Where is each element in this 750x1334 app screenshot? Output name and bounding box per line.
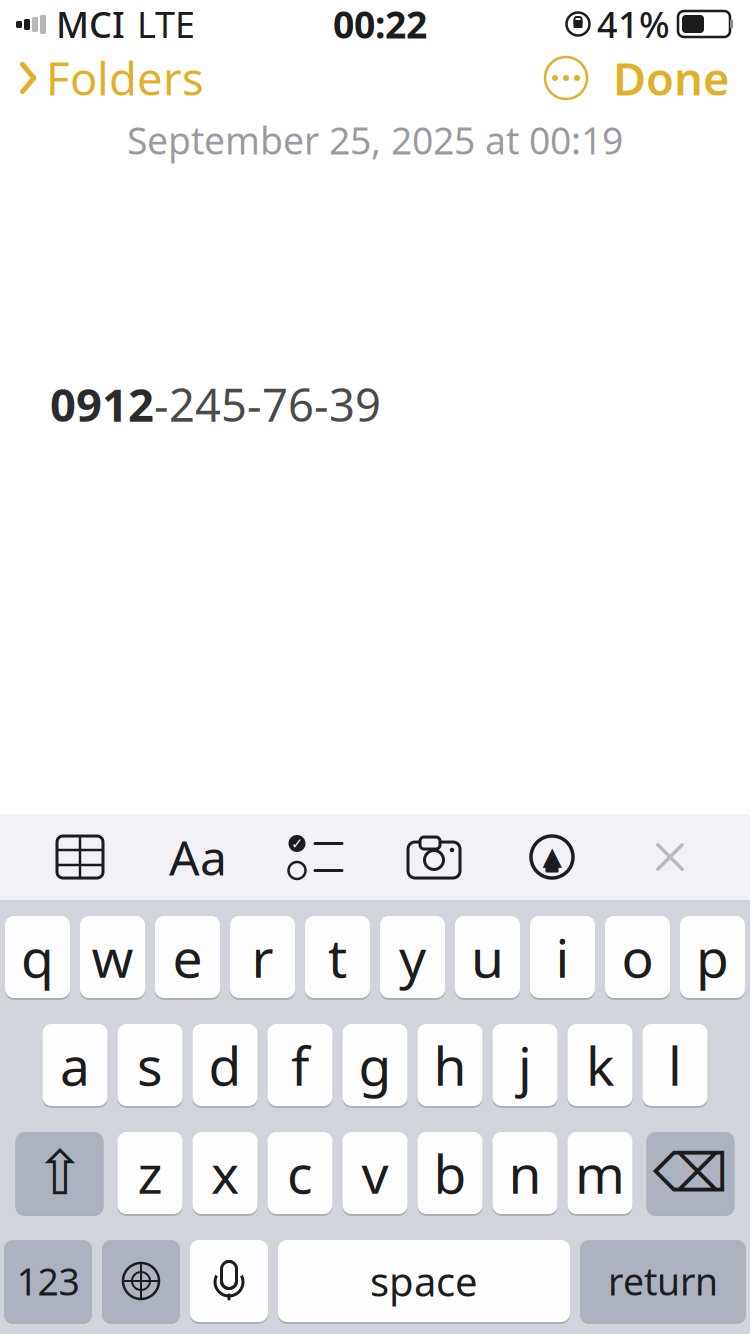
button[interactable]: w	[80, 914, 145, 1000]
button[interactable]: Delete	[646, 1130, 734, 1216]
staticText: a	[60, 1030, 90, 1100]
button[interactable]: s	[117, 1022, 182, 1108]
button[interactable]: z	[117, 1130, 182, 1216]
staticText: ✓	[291, 835, 303, 852]
button[interactable]: Checklist	[278, 822, 354, 892]
staticText: e	[172, 922, 202, 992]
button[interactable]: c	[267, 1130, 332, 1216]
staticText: h	[433, 1030, 466, 1100]
button[interactable]: Numbers	[4, 1238, 92, 1324]
button[interactable]: Markup	[514, 822, 590, 892]
button[interactable]: Format	[160, 822, 236, 892]
staticText: Aa	[169, 825, 227, 889]
button[interactable]: Folders	[4, 50, 218, 106]
staticText: ⌫	[653, 1143, 728, 1203]
staticText: o	[621, 922, 653, 992]
staticText: i	[555, 922, 569, 992]
button[interactable]: Dictate	[190, 1238, 268, 1324]
staticText: 00:22	[333, 0, 427, 49]
staticText: Folders	[46, 48, 204, 108]
button[interactable]: a	[42, 1022, 107, 1108]
staticText: MCI	[56, 0, 125, 48]
button[interactable]: q	[5, 914, 70, 1000]
staticText: b	[433, 1138, 466, 1208]
button[interactable]: v	[342, 1130, 407, 1216]
staticText: l	[668, 1030, 682, 1100]
staticText: y	[399, 922, 426, 992]
button[interactable]: x	[192, 1130, 257, 1216]
staticText: r	[251, 922, 273, 992]
staticText: n	[508, 1138, 541, 1208]
button[interactable]: j	[492, 1022, 557, 1108]
staticText: ⇧	[34, 1138, 85, 1208]
button[interactable]: Hide keyboard	[632, 822, 708, 892]
button[interactable]: r	[230, 914, 295, 1000]
button[interactable]: m	[567, 1130, 632, 1216]
staticText: s	[137, 1030, 163, 1100]
staticText: ▲	[542, 842, 561, 870]
button[interactable]: u	[455, 914, 520, 1000]
button[interactable]: h	[417, 1022, 482, 1108]
staticText: 123	[16, 1256, 79, 1306]
button[interactable]: y	[380, 914, 445, 1000]
staticText: 0912	[50, 374, 154, 434]
button[interactable]: i	[530, 914, 595, 1000]
button[interactable]: l	[642, 1022, 707, 1108]
button[interactable]: e	[155, 914, 220, 1000]
staticText: m	[575, 1138, 625, 1208]
button[interactable]: o	[605, 914, 670, 1000]
staticText: k	[586, 1030, 614, 1100]
staticText: 41%	[597, 0, 670, 48]
staticText: w	[91, 922, 133, 992]
staticText: -245-76-39	[154, 374, 381, 434]
button[interactable]: b	[417, 1130, 482, 1216]
button[interactable]: f	[267, 1022, 332, 1108]
staticText: x	[211, 1138, 239, 1208]
staticText: Done	[613, 48, 730, 108]
staticText: q	[21, 922, 54, 992]
staticText: space	[370, 1254, 478, 1307]
button[interactable]: n	[492, 1130, 557, 1216]
staticText: d	[208, 1030, 241, 1100]
button[interactable]: Next keyboard	[102, 1238, 180, 1324]
button[interactable]: Camera	[396, 822, 472, 892]
button[interactable]: return	[580, 1238, 746, 1324]
button[interactable]: p	[680, 914, 745, 1000]
staticText: f	[291, 1030, 309, 1100]
staticText: c	[287, 1138, 313, 1208]
button[interactable]: Insert table	[42, 822, 118, 892]
button[interactable]: Shift	[15, 1130, 103, 1216]
button[interactable]: g	[342, 1022, 407, 1108]
staticText: p	[696, 922, 729, 992]
button[interactable]: More	[535, 50, 597, 106]
staticText: v	[361, 1138, 388, 1208]
button[interactable]: Done	[597, 50, 746, 106]
staticText: t	[328, 922, 347, 992]
button[interactable]: t	[305, 914, 370, 1000]
staticText: September 25, 2025 at 00:19	[127, 115, 623, 165]
staticText: u	[471, 922, 504, 992]
button[interactable]: k	[567, 1022, 632, 1108]
staticText: g	[358, 1030, 391, 1100]
staticText: j	[518, 1030, 532, 1100]
button[interactable]: space	[278, 1238, 570, 1324]
button[interactable]: d	[192, 1022, 257, 1108]
staticText: return	[608, 1256, 718, 1306]
staticText: z	[137, 1138, 162, 1208]
staticText: LTE	[137, 0, 195, 48]
